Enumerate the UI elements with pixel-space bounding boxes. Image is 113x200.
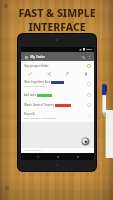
button[interactable]: Share (45, 70, 52, 77)
button[interactable]: Mark complete (86, 92, 92, 98)
button[interactable]: Went Ingredient Kart (21, 78, 94, 90)
button[interactable]: Add tasks (21, 90, 94, 100)
staticText: 10:10 (86, 48, 92, 51)
button[interactable]: Back (34, 153, 41, 160)
staticText: INTERFACE (28, 20, 86, 34)
button[interactable]: Watch Game of Thrones (21, 100, 94, 110)
button[interactable]: Home (54, 153, 61, 160)
button[interactable]: Edit (26, 70, 33, 77)
button[interactable]: More options (86, 54, 92, 60)
button[interactable]: Attach (63, 70, 70, 77)
staticText: Where I order offline (24, 85, 45, 88)
button[interactable]: Mark complete (86, 102, 92, 108)
staticText: Add tasks (24, 93, 36, 97)
staticText: Watch Game of Thrones (24, 103, 54, 107)
button[interactable]: Mark complete (86, 63, 92, 69)
button[interactable]: Buy milk (21, 110, 94, 122)
button[interactable]: Recents (74, 153, 81, 160)
button[interactable]: Menu (23, 54, 29, 60)
staticText: Buy milk (24, 112, 35, 116)
staticText: Add a new task (24, 149, 41, 152)
button[interactable]: Buy project folder (21, 61, 94, 78)
button[interactable]: Delete (82, 70, 89, 77)
staticText: FAST & SIMPLE (18, 6, 96, 20)
button[interactable]: App logo (81, 137, 90, 146)
staticText: My Tasks (30, 54, 45, 59)
staticText: 2 liters full cream, 1 litre skimmed (24, 117, 56, 120)
button[interactable]: Search (80, 54, 86, 60)
staticText: Buy project folder (24, 64, 49, 68)
button[interactable]: Mark complete (86, 81, 92, 87)
staticText: Went Ingredient Kart (24, 80, 50, 84)
